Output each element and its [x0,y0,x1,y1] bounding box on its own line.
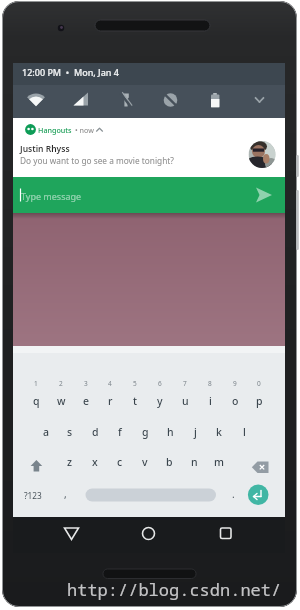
button[interactable] [65,86,97,116]
button[interactable] [246,184,280,208]
button[interactable]: k [205,423,233,441]
button[interactable]: 4 [96,374,124,392]
button[interactable] [90,122,108,138]
staticText: a [43,425,50,439]
button[interactable] [199,86,231,116]
button[interactable] [246,483,270,507]
staticText: 12:00 PM • Mon, Jan 4 [22,66,119,78]
button[interactable] [85,486,217,504]
staticText: z [67,455,73,469]
staticText: p [256,394,263,408]
button[interactable] [20,86,52,116]
button[interactable]: t [121,392,149,410]
button[interactable]: , [51,485,79,503]
button[interactable]: ?123 [19,486,47,504]
button[interactable]: b [155,453,183,471]
button[interactable]: l [230,423,258,441]
staticText: • now [75,125,94,135]
button[interactable]: 0 [245,374,273,392]
button[interactable]: n [180,453,208,471]
staticText: . [232,487,235,501]
staticText: ?123 [24,490,42,501]
staticText: h [167,425,174,439]
button[interactable]: v [131,453,159,471]
button[interactable]: y [146,392,174,410]
staticText: f [118,425,122,439]
button[interactable]: q [22,392,50,410]
staticText: t [133,394,138,408]
button[interactable]: j [181,423,209,441]
button[interactable] [208,521,242,547]
button[interactable]: . [219,485,247,503]
button[interactable]: 2 [47,374,75,392]
button[interactable]: r [96,392,124,410]
staticText: l [243,425,246,439]
staticText: m [214,455,224,469]
staticText: Do you want to go see a movie tonight? [20,155,174,166]
staticText: 9 [233,379,237,388]
staticText: x [92,455,98,469]
staticText: w [57,394,66,408]
button[interactable] [13,177,285,213]
staticText: q [33,394,40,408]
button[interactable]: u [171,392,199,410]
button[interactable] [154,86,186,116]
button[interactable]: 5 [121,374,149,392]
staticText: u [182,394,189,408]
staticText: d [92,425,99,439]
staticText: e [83,394,90,408]
staticText: 2 [59,379,63,388]
button[interactable]: s [56,423,84,441]
staticText: k [216,425,222,439]
button[interactable]: f [106,423,134,441]
button[interactable]: 9 [221,374,249,392]
staticText: , [64,487,67,501]
staticText: n [191,455,198,469]
staticText: Justin Rhyss [20,143,70,155]
button[interactable]: h [156,423,184,441]
staticText: o [232,394,239,408]
staticText: s [67,425,73,439]
staticText: Hangouts [38,125,72,135]
button[interactable] [20,452,46,472]
button[interactable]: c [106,453,134,471]
button[interactable]: o [221,392,249,410]
button[interactable] [55,521,89,547]
staticText: 1 [34,379,38,388]
staticText: 5 [133,379,137,388]
button[interactable]: w [47,392,75,410]
button[interactable]: 1 [22,374,50,392]
button[interactable] [248,452,274,472]
staticText: v [142,455,148,469]
button[interactable] [13,118,285,177]
button[interactable]: p [245,392,273,410]
staticText: g [142,425,149,439]
button[interactable] [110,86,142,116]
staticText: b [166,455,173,469]
staticText: i [209,394,212,408]
button[interactable]: 3 [72,374,100,392]
staticText: c [117,455,123,469]
staticText: 6 [158,379,162,388]
button[interactable] [244,86,276,116]
button[interactable]: m [205,453,233,471]
button[interactable]: e [72,392,100,410]
staticText: 8 [208,379,212,388]
button[interactable]: 7 [171,374,199,392]
button[interactable]: i [196,392,224,410]
button[interactable]: z [56,453,84,471]
button[interactable]: 6 [146,374,174,392]
staticText: http://blog.csdn.net/ [67,578,282,601]
staticText: 3 [84,379,88,388]
staticText: r [108,394,113,408]
button[interactable] [131,521,165,547]
button[interactable]: x [81,453,109,471]
button[interactable]: 8 [196,374,224,392]
staticText: 4 [108,379,112,388]
button[interactable]: a [32,423,60,441]
staticText: 0 [257,379,261,388]
staticText: Type message [21,190,82,202]
button[interactable]: d [81,423,109,441]
button[interactable]: g [131,423,159,441]
staticText: y [157,394,163,408]
